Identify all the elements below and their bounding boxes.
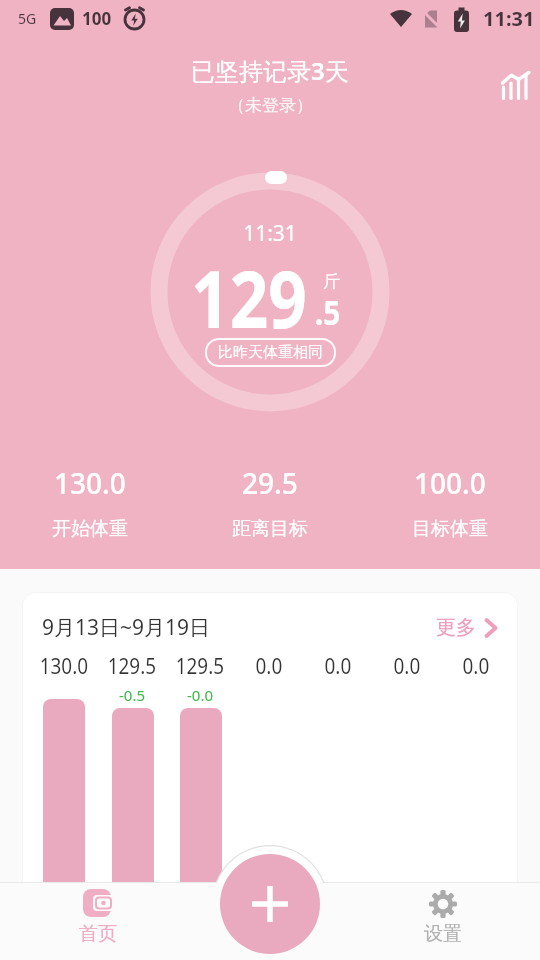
staticText: 11:31 — [0, 219, 540, 248]
staticText: 首页 — [79, 922, 117, 946]
staticText: 0.0 — [324, 652, 351, 681]
staticText: 更多 — [436, 615, 476, 640]
staticText: 100.0 — [414, 464, 486, 502]
staticText: 11:31 — [483, 5, 535, 32]
staticText: 0.0 — [255, 652, 282, 681]
staticText: 130.0 — [54, 464, 126, 502]
staticText: 129.5 — [108, 652, 156, 681]
staticText: 距离目标 — [232, 517, 308, 541]
staticText: 开始体重 — [52, 517, 128, 541]
staticText: 29.5 — [242, 464, 298, 502]
staticText: .5 — [315, 289, 341, 335]
staticText: 斤 — [323, 271, 340, 292]
button[interactable] — [220, 854, 320, 954]
staticText: （未登录） — [228, 95, 313, 116]
staticText: -0.0 — [187, 685, 214, 705]
staticText: 5G — [18, 9, 37, 28]
staticText: 目标体重 — [412, 517, 488, 541]
staticText: 0.0 — [393, 652, 420, 681]
staticText: 已坚持记录3天 — [191, 54, 349, 87]
button[interactable]: 比昨天体重相同 — [205, 338, 336, 367]
button[interactable]: 设置 — [345, 883, 540, 960]
button[interactable]: 更多 — [436, 615, 502, 640]
staticText: -0.5 — [119, 685, 146, 705]
button[interactable] — [498, 67, 534, 103]
staticText: 130.0 — [40, 652, 88, 681]
button[interactable]: 首页 — [0, 883, 195, 960]
staticText: 100 — [82, 7, 112, 30]
staticText: 比昨天体重相同 — [218, 343, 323, 362]
staticText: 9月13日~9月19日 — [42, 613, 211, 642]
staticText: 129.5 — [176, 652, 224, 681]
staticText: 0.0 — [462, 652, 489, 681]
staticText: 设置 — [424, 922, 462, 946]
staticText: 129 — [191, 245, 307, 351]
